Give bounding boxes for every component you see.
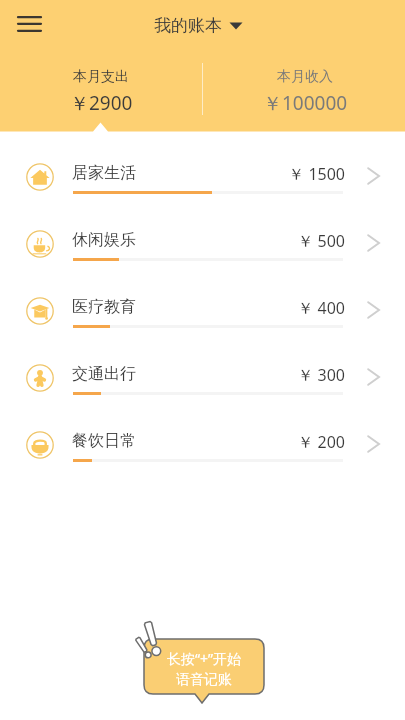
button[interactable]: 餐饮日常 <box>0 409 405 476</box>
button[interactable]: 我的账本 <box>154 10 243 40</box>
staticText: 语音记账 <box>176 671 232 689</box>
staticText: ￥100000 <box>263 90 348 116</box>
staticText: 我的账本 <box>154 15 222 36</box>
staticText: ￥2900 <box>70 90 133 116</box>
staticText: ￥ 500 <box>225 230 345 252</box>
button[interactable]: 医疗教育 <box>0 275 405 342</box>
staticText: ￥ 300 <box>225 364 345 386</box>
staticText: ￥ 200 <box>225 431 345 453</box>
staticText: 长按“+”开始 <box>167 649 242 668</box>
staticText: 交通出行 <box>72 364 136 384</box>
button[interactable]: 居家生活 <box>0 141 405 208</box>
staticText: 本月支出 <box>73 68 129 86</box>
staticText: ￥ 400 <box>225 297 345 319</box>
staticText: 居家生活 <box>72 163 136 183</box>
staticText: 休闲娱乐 <box>72 230 136 250</box>
staticText: 本月收入 <box>277 68 333 86</box>
button[interactable]: 交通出行 <box>0 342 405 409</box>
button[interactable]: Menu <box>7 2 51 46</box>
button[interactable]: 休闲娱乐 <box>0 208 405 275</box>
staticText: ￥ 1500 <box>225 163 345 185</box>
button[interactable]: 长按“+”开始 <box>132 612 268 712</box>
staticText: 医疗教育 <box>72 297 136 317</box>
staticText: 餐饮日常 <box>72 431 136 451</box>
